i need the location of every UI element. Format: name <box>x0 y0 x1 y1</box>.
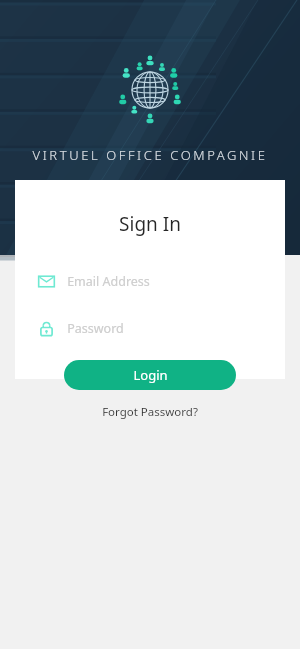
other: Email Address field <box>38 273 55 290</box>
button[interactable]: Password field <box>15 313 285 343</box>
staticText: Email Address <box>67 273 150 290</box>
button[interactable]: Forgot Password? <box>96 402 204 422</box>
staticText: Sign In <box>119 211 181 237</box>
button[interactable]: Email Address field <box>15 266 285 296</box>
other: Password field <box>38 320 55 337</box>
staticText: Login <box>133 366 168 384</box>
staticText: Password <box>67 320 124 337</box>
button[interactable]: Login <box>64 360 236 390</box>
staticText: VIRTUEL OFFICE COMPAGNIE <box>32 146 268 164</box>
staticText: Forgot Password? <box>102 404 198 420</box>
